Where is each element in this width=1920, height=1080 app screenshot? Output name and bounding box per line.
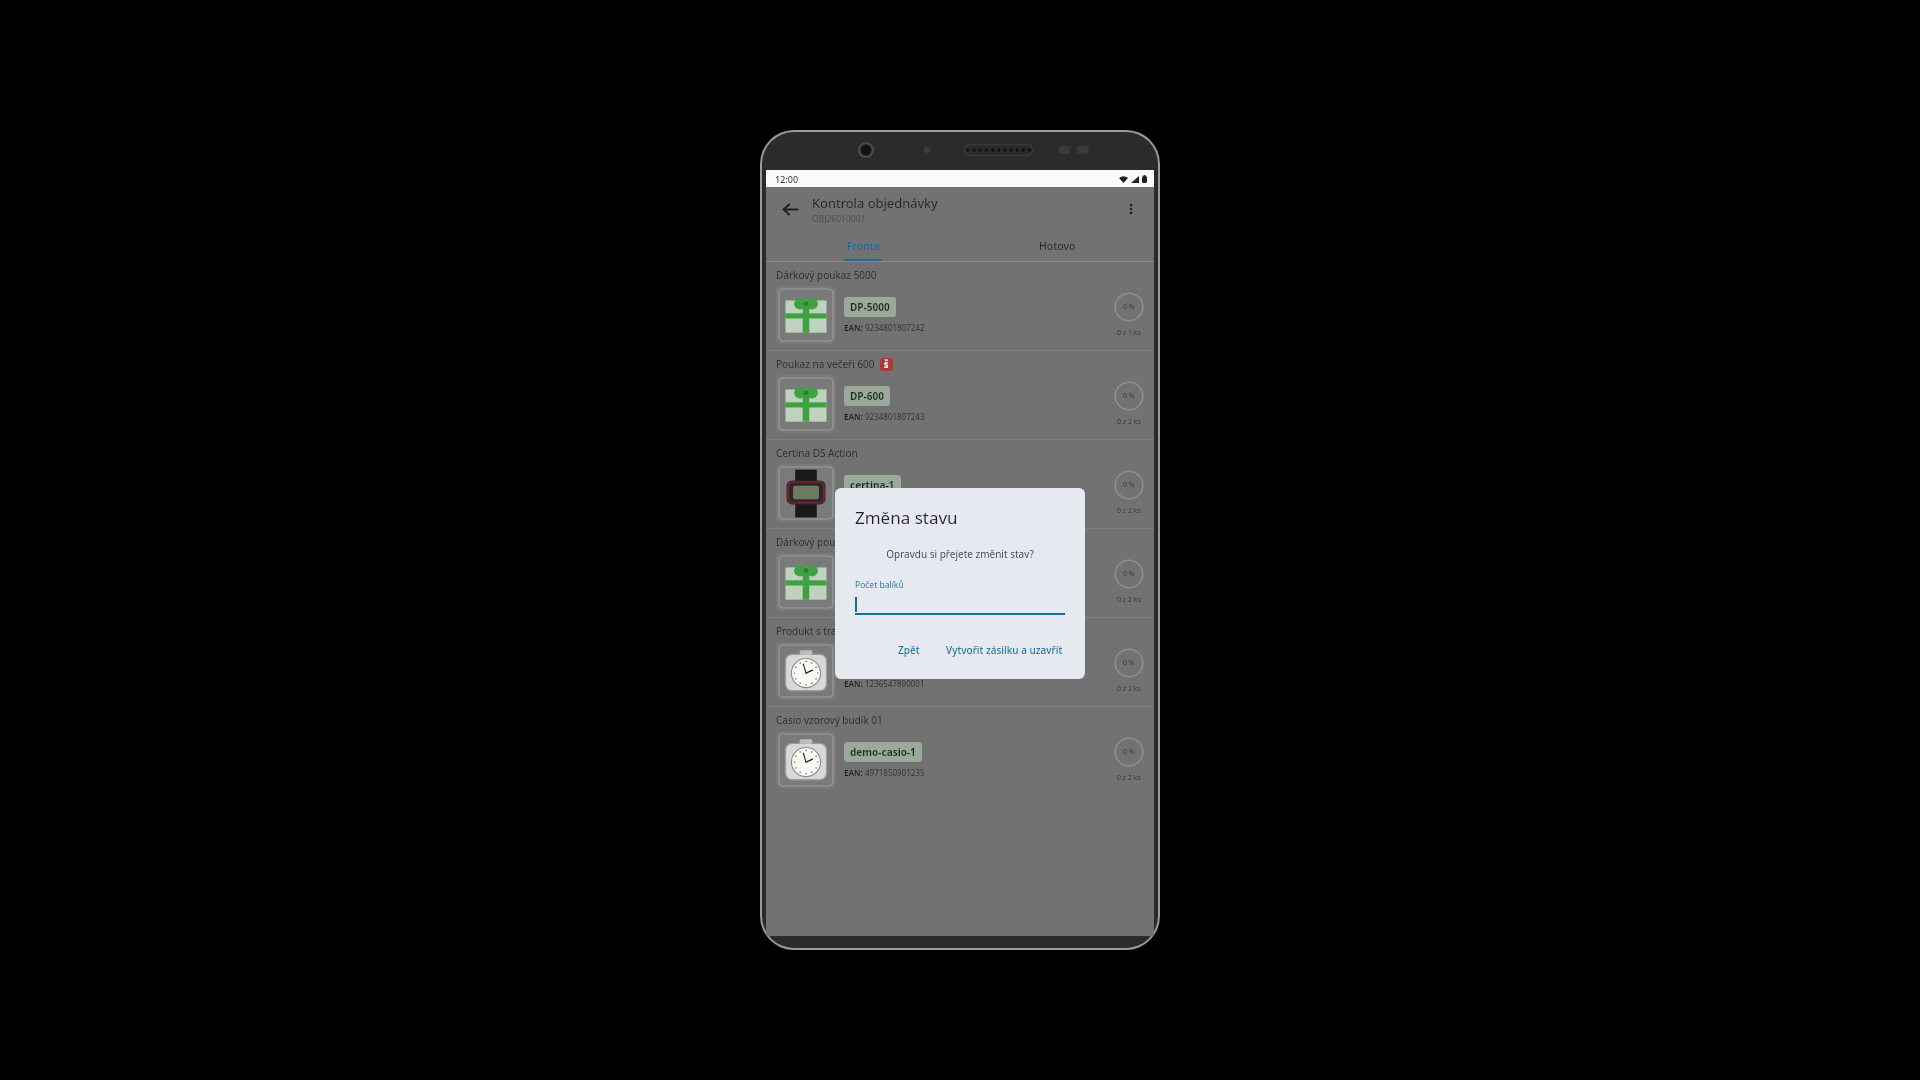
staticText: Poukaz na večeři 600	[776, 357, 875, 371]
staticText: 0 %	[1123, 658, 1135, 668]
staticText: Opravdu si přejete změnit stav?	[851, 547, 1069, 561]
staticText: 9234801807242	[865, 322, 925, 333]
staticText: EAN:	[844, 411, 865, 422]
staticText: sn-trace-out	[850, 656, 911, 670]
staticText: 12:00	[775, 173, 799, 185]
staticText: DP-5000	[850, 300, 890, 314]
staticText: Počet balíků	[855, 579, 904, 591]
staticText: Kontrola objednávky	[812, 194, 938, 212]
staticText: 0 %	[1123, 391, 1135, 401]
button[interactable]: Dárkový poukaz 2000	[766, 529, 1154, 617]
button[interactable]: Zpět	[890, 637, 928, 663]
staticText: Hotovo	[1039, 239, 1076, 253]
staticText: 4971850901235	[865, 767, 925, 778]
button[interactable]: Fronta	[766, 231, 960, 261]
staticText: EAN:	[844, 589, 865, 600]
staticText: 0 %	[1123, 480, 1135, 490]
staticText: 0 z 2 ks	[1117, 595, 1141, 605]
staticText: 0 %	[1123, 302, 1135, 312]
staticText: demo-casio-1	[850, 745, 916, 759]
staticText: 0 %	[1123, 569, 1135, 579]
staticText: certina-1	[850, 478, 895, 492]
staticText: 0 z 1 ks	[1117, 328, 1141, 338]
staticText: EAN:	[844, 322, 865, 333]
staticText: Š	[884, 359, 889, 370]
button[interactable]: Casio vzorový budík 01	[766, 707, 1154, 795]
staticText: Certina DS Action	[776, 446, 858, 460]
staticText: 0 z 2 ks	[1117, 773, 1141, 783]
staticText: Dárkový poukaz 2000	[776, 535, 877, 549]
staticText: Změna stavu	[855, 506, 958, 529]
staticText: DP-600	[850, 389, 884, 403]
button[interactable]: More options	[1116, 194, 1146, 224]
staticText: 9234801807243	[865, 411, 925, 422]
button[interactable]: Dárkový poukaz 5000	[766, 262, 1154, 350]
button[interactable]: Certina DS Action	[766, 440, 1154, 528]
staticText: EAN:	[844, 678, 865, 689]
staticText: EAN:	[844, 767, 865, 778]
staticText: Dárkový poukaz 5000	[776, 268, 877, 282]
staticText: 0 z 2 ks	[1117, 417, 1141, 427]
staticText: 1236547890001	[865, 678, 925, 689]
staticText: Zpět	[898, 643, 920, 657]
staticText: 0 z 2 ks	[1117, 684, 1141, 694]
button[interactable]: Poukaz na večeři 600	[766, 351, 1154, 439]
staticText: Vytvořit zásilku a uzavřít	[946, 643, 1063, 657]
button[interactable]: Produkt s trasováním sériových čísel na …	[766, 618, 1154, 706]
button[interactable]: Back	[774, 193, 806, 225]
staticText: OBJ26010001	[812, 213, 866, 225]
staticText: 0 z 2 ks	[1117, 506, 1141, 516]
staticText: Produkt s trasováním sériových čísel na …	[776, 624, 990, 638]
staticText: 0 %	[1123, 747, 1135, 757]
button[interactable]: Hotovo	[960, 231, 1154, 261]
staticText: Fronta	[847, 239, 880, 253]
staticText: Casio vzorový budík 01	[776, 713, 883, 727]
button[interactable]: Vytvořit zásilku a uzavřít	[938, 637, 1071, 663]
